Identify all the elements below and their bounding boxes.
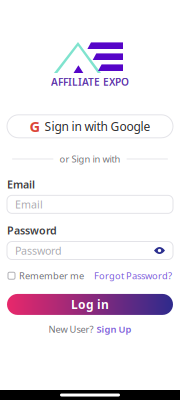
staticText: AFFILIATE EXPO [51, 75, 129, 89]
staticText: G [29, 117, 40, 136]
staticText: Email [15, 197, 43, 211]
staticText: Forgot Password? [94, 269, 172, 282]
staticText: New User? [48, 323, 93, 335]
staticText: Sign in with Google [44, 118, 150, 134]
staticText: Email [7, 177, 35, 191]
staticText: Sign Up [96, 323, 131, 335]
staticText: Remember me [19, 269, 84, 282]
staticText: Password [15, 243, 62, 258]
button[interactable]: Forgot Password? [94, 269, 172, 282]
staticText: or Sign in with [59, 153, 120, 165]
staticText: Password [7, 223, 57, 238]
button[interactable]: G [7, 115, 173, 138]
button[interactable]: Remember me [8, 269, 84, 282]
button[interactable]: Log in [7, 294, 173, 315]
button[interactable]: Sign Up [96, 323, 131, 335]
staticText: Log in [71, 296, 109, 312]
